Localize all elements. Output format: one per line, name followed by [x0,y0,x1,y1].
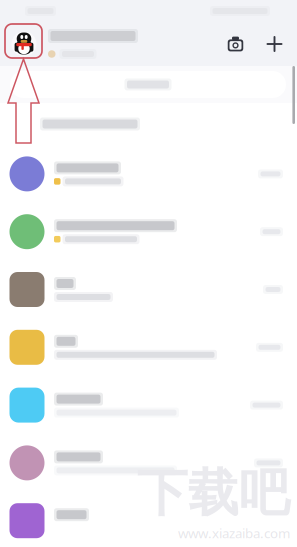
staticText: www.xiazaiba.com [178,524,290,542]
button[interactable] [0,203,297,261]
button[interactable] [0,318,297,376]
button[interactable] [0,145,297,203]
button[interactable]: Search [10,71,286,98]
button[interactable]: Add [266,35,283,52]
button[interactable] [0,261,297,318]
staticText: 下载吧 [137,462,290,524]
button[interactable] [0,492,297,547]
button[interactable] [0,434,297,492]
button[interactable]: Profile [8,28,40,60]
button[interactable] [0,376,297,434]
button[interactable]: Camera [227,35,244,52]
